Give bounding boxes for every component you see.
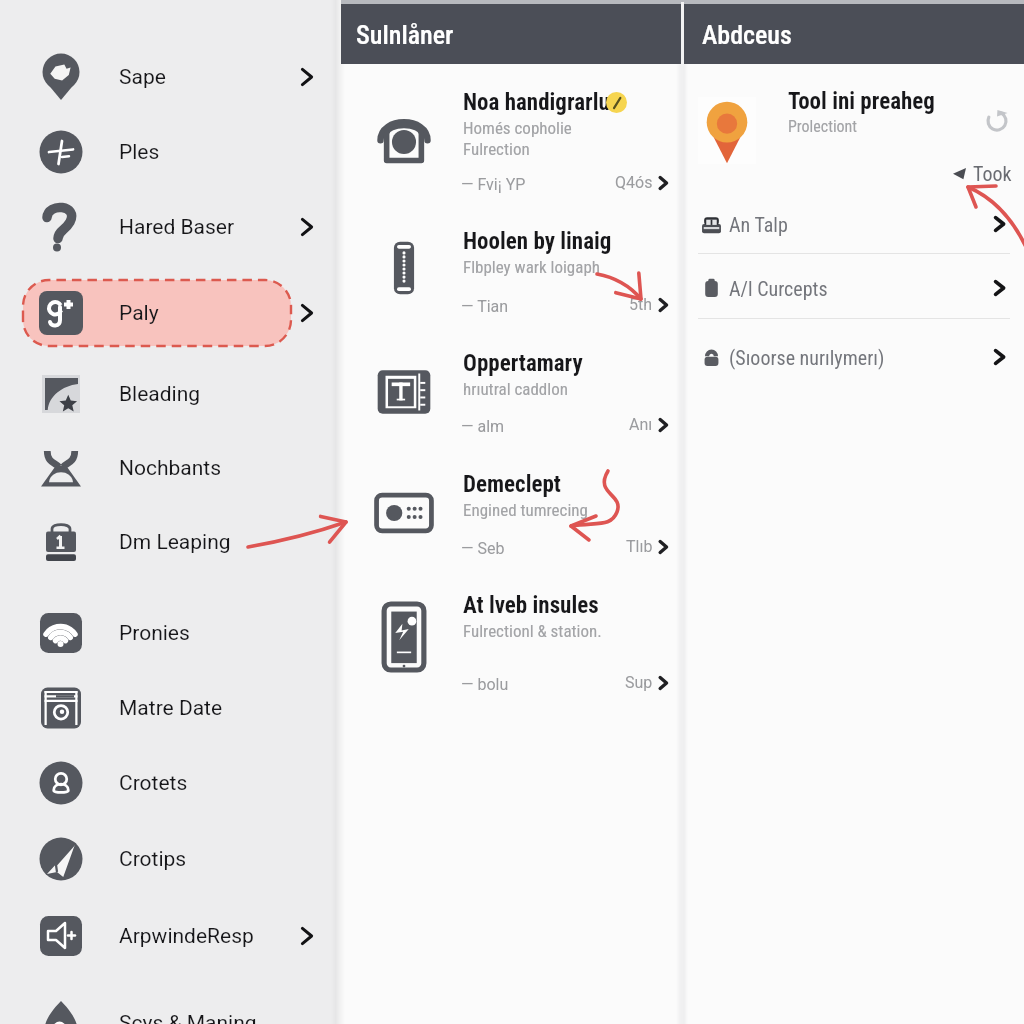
staticText: Tool ini preaheg xyxy=(788,88,935,115)
staticText: Fulrection xyxy=(463,139,530,159)
staticText: Sape xyxy=(119,65,166,90)
staticText: Abdceus xyxy=(702,20,792,50)
staticText: Took xyxy=(973,162,1012,185)
staticText: Ples xyxy=(119,140,160,165)
staticText: Oppertamary xyxy=(463,350,583,377)
button[interactable]: Pronies xyxy=(0,597,341,669)
staticText: Prolectiont xyxy=(788,117,858,136)
staticText: ArpwindeResp xyxy=(119,924,254,949)
staticText: — Tian xyxy=(461,297,509,316)
button[interactable]: Crotips xyxy=(0,823,341,895)
button[interactable]: Hoolen by linaig xyxy=(341,211,684,330)
staticText: — Seb xyxy=(461,539,505,558)
staticText: Demeclept xyxy=(463,471,561,498)
staticText: Nochbants xyxy=(119,456,222,481)
button[interactable]: Took xyxy=(953,160,1012,186)
staticText: Crotips xyxy=(119,847,187,872)
staticText: Tlıb xyxy=(626,537,653,556)
staticText: Hoolen by linaig xyxy=(463,228,612,255)
staticText: An Talp xyxy=(729,213,788,236)
staticText: Crotets xyxy=(119,771,188,796)
staticText: Anı xyxy=(629,415,653,434)
staticText: 5th xyxy=(629,295,653,314)
staticText: Engined tumrecing xyxy=(463,500,588,520)
staticText: Homés copholie xyxy=(463,118,572,138)
staticText: Paly xyxy=(119,301,159,326)
button[interactable]: Matre Date xyxy=(0,672,341,744)
staticText: Noa handigrarlu xyxy=(463,89,610,116)
button[interactable]: Refresh xyxy=(981,105,1013,137)
staticText: At lveb insules xyxy=(463,592,599,619)
button[interactable]: Demeclept xyxy=(341,454,684,572)
staticText: — bolu xyxy=(461,675,509,694)
staticText: Hared Baser xyxy=(119,215,235,240)
staticText: Flbpley wark loigaph xyxy=(463,257,600,277)
staticText: Q4ós xyxy=(615,173,653,192)
staticText: Scys & Maning xyxy=(119,1011,257,1024)
button[interactable]: Dm Leaping xyxy=(0,506,341,578)
staticText: (Sıoorse nurılymerı) xyxy=(729,346,885,369)
staticText: Pronies xyxy=(119,621,190,646)
button[interactable]: Sape xyxy=(0,41,341,113)
staticText: Fulrectionl & station. xyxy=(463,621,602,641)
button[interactable]: Scys & Maning xyxy=(0,987,341,1024)
staticText: Sup xyxy=(625,673,653,692)
staticText: — Fvi¡ YP xyxy=(461,175,526,194)
staticText: A/l Curcepts xyxy=(729,277,828,300)
button[interactable]: Hared Baser xyxy=(0,191,341,263)
button[interactable]: Ples xyxy=(0,116,341,188)
button[interactable]: Oppertamary xyxy=(341,333,684,450)
staticText: Dm Leaping xyxy=(119,530,231,555)
button[interactable]: Noa handigrarlu xyxy=(341,72,684,208)
button[interactable]: Crotets xyxy=(0,747,341,819)
staticText: Bleading xyxy=(119,382,201,407)
staticText: Matre Date xyxy=(119,696,223,721)
button[interactable]: A/l Curcepts xyxy=(684,256,1024,320)
button[interactable]: An Talp xyxy=(684,192,1024,256)
staticText: Sulnlåner xyxy=(356,20,454,50)
button[interactable]: Paly xyxy=(0,277,341,349)
staticText: — alm xyxy=(461,417,505,436)
button[interactable]: At lveb insules xyxy=(341,575,684,708)
button[interactable]: Nochbants xyxy=(0,432,341,504)
button[interactable]: (Sıoorse nurılymerı) xyxy=(684,325,1024,389)
staticText: hrıutral caddlon xyxy=(463,379,568,399)
button[interactable]: ArpwindeResp xyxy=(0,900,341,972)
button[interactable]: Bleading xyxy=(0,358,341,430)
